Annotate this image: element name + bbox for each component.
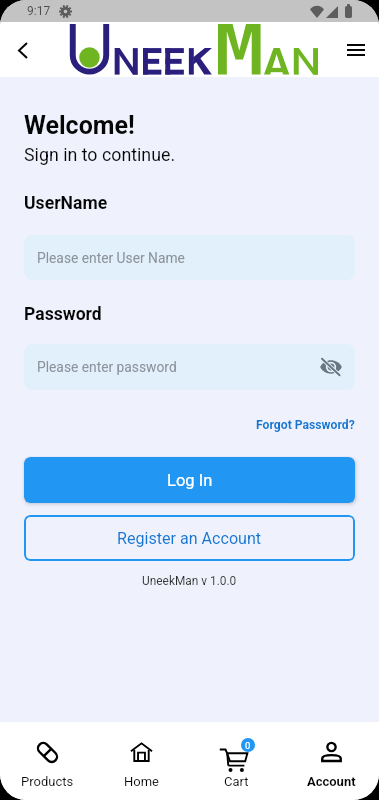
staticText: Cart [224,774,249,789]
button[interactable]: Products [0,722,94,800]
staticText: UserName [24,193,108,214]
staticText: Sign in to continue. [24,144,176,165]
button[interactable]: Account [284,722,379,800]
button[interactable]: Home [94,722,189,800]
button[interactable]: Back [3,30,43,70]
staticText: Register an Account [117,529,262,548]
staticText: Products [21,774,74,789]
button[interactable]: Menu [336,30,376,70]
staticText: Welcome! [24,111,135,140]
button[interactable]: Log In [24,457,355,503]
staticText: Password [24,304,102,325]
button[interactable]: Forgot Password? [256,418,355,432]
button[interactable]: Register an Account [24,515,355,561]
staticText: 9:17 [27,4,51,18]
staticText: UneekMan v 1.0.0 [142,574,237,588]
staticText: 0 [245,740,251,751]
staticText: Please enter password [37,359,177,375]
staticText: Account [307,774,356,789]
button[interactable]: Please enter User Name [24,235,355,280]
button[interactable]: Show password [315,351,347,383]
button[interactable]: 0 [189,722,284,800]
button[interactable]: Please enter password [24,344,355,390]
staticText: Please enter User Name [37,250,185,266]
staticText: Home [124,774,159,789]
staticText: Log In [167,471,213,490]
